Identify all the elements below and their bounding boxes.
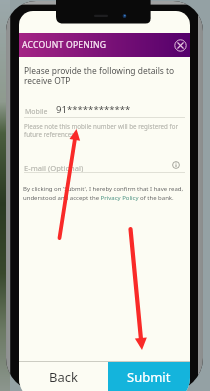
button[interactable]: ACCOUNT OPENING [19,33,190,57]
staticText: Back [49,368,78,386]
button[interactable]: Back [19,362,108,391]
staticText: 91************ [56,103,131,116]
button[interactable]: Close [171,36,189,54]
button[interactable]: Information [169,158,183,172]
staticText: By clicking on 'Submit', I hereby confir… [23,185,190,202]
staticText: Please note this mobile number will be r… [24,122,182,138]
staticText: Mobile [25,107,48,117]
staticText: Please provide the following details to … [24,65,179,87]
staticText: E-mail (Optional) [24,163,84,173]
button[interactable]: Submit [108,362,190,391]
staticText: Submit [127,368,171,386]
staticText: ACCOUNT OPENING [22,39,107,51]
